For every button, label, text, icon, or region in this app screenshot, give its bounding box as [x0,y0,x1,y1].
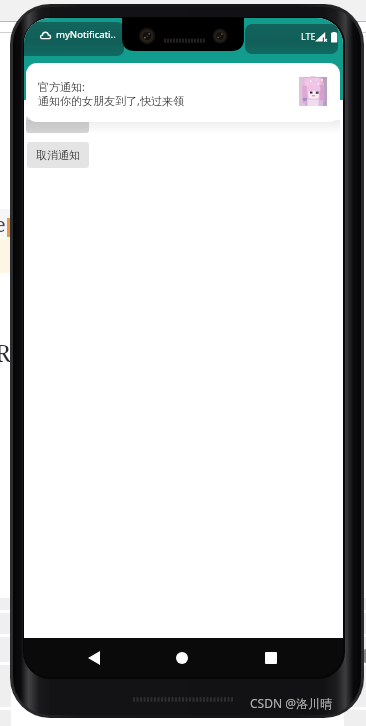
button[interactable]: 取消通知 [27,142,89,168]
staticText: myNotificati.. [56,28,116,41]
staticText: 取消通知 [36,148,80,162]
button[interactable]: myNotificati.. [56,28,116,41]
button[interactable]: 官方通知: [26,63,340,122]
staticText: e [0,211,6,238]
button[interactable]: Back [68,638,120,677]
staticText: CSDN @洛川晴 [250,695,332,711]
button[interactable]: Recent apps [245,638,297,677]
button[interactable] [26,116,89,133]
other: Signal and battery [315,32,341,44]
staticText: LTE [301,30,316,42]
other: Speaker [0,694,366,706]
staticText: R [0,336,11,369]
staticText: 通知你的女朋友到了,快过来领 [38,93,184,108]
button[interactable]: Home [156,638,208,677]
staticText: 官方通知: [38,79,85,94]
button[interactable]: Notification app icon [40,30,51,41]
